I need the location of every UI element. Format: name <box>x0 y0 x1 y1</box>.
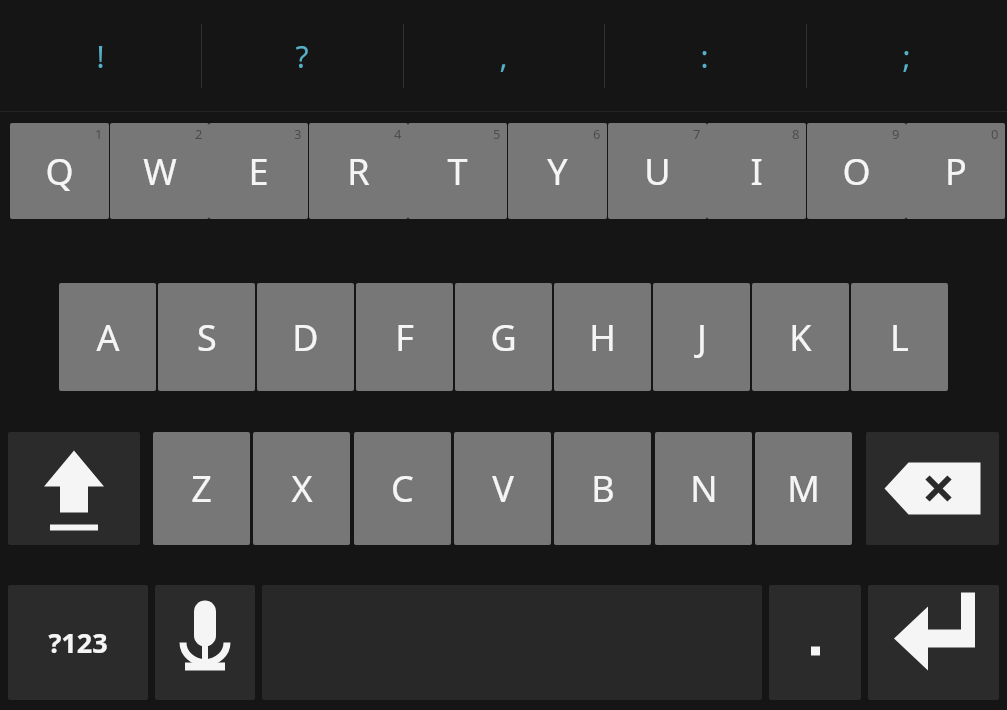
button[interactable]: Z <box>153 432 250 545</box>
staticText: 7 <box>693 125 701 143</box>
button[interactable]: Q <box>10 123 109 219</box>
button[interactable]: ! <box>0 0 201 112</box>
staticText: 1 <box>95 125 103 143</box>
button[interactable]: Enter <box>868 585 999 700</box>
button[interactable]: ?123 <box>8 585 148 700</box>
staticText: L <box>890 313 909 362</box>
button[interactable]: P <box>906 123 1005 219</box>
staticText: 3 <box>294 125 302 143</box>
button[interactable]: S <box>158 283 255 391</box>
button[interactable]: : <box>604 0 805 112</box>
staticText: 9 <box>892 125 900 143</box>
button[interactable]: Period <box>769 585 861 700</box>
button[interactable]: G <box>455 283 552 391</box>
button[interactable]: F <box>356 283 453 391</box>
staticText: X <box>291 464 313 513</box>
staticText: 6 <box>593 125 601 143</box>
staticText: F <box>395 313 414 362</box>
staticText: K <box>789 313 812 362</box>
button[interactable]: I <box>707 123 806 219</box>
button[interactable]: Shift <box>8 432 140 545</box>
staticText: 0 <box>991 125 999 143</box>
staticText: S <box>197 313 217 362</box>
staticText: V <box>492 464 514 513</box>
button[interactable]: B <box>554 432 651 545</box>
button[interactable]: H <box>554 283 651 391</box>
button[interactable]: R <box>309 123 408 219</box>
button[interactable]: K <box>752 283 849 391</box>
staticText: , <box>499 36 508 77</box>
staticText: ; <box>902 36 911 77</box>
button[interactable]: W <box>110 123 209 219</box>
button[interactable]: U <box>608 123 707 219</box>
staticText: J <box>697 313 707 362</box>
staticText: P <box>945 147 967 196</box>
staticText: ? <box>295 36 309 77</box>
staticText: 2 <box>195 125 203 143</box>
button[interactable]: N <box>655 432 752 545</box>
staticText: 5 <box>493 125 501 143</box>
staticText: T <box>447 147 468 196</box>
staticText: H <box>589 313 616 362</box>
button[interactable]: ? <box>201 0 402 112</box>
button[interactable]: C <box>354 432 451 545</box>
staticText: A <box>96 313 120 362</box>
button[interactable]: , <box>403 0 604 112</box>
staticText: Z <box>191 464 212 513</box>
button[interactable]: Voice input <box>155 585 255 700</box>
staticText: 8 <box>792 125 800 143</box>
staticText: W <box>143 147 177 196</box>
button[interactable]: J <box>653 283 750 391</box>
button[interactable]: ; <box>806 0 1007 112</box>
button[interactable]: M <box>755 432 852 545</box>
button[interactable]: D <box>257 283 354 391</box>
staticText: Y <box>547 147 568 196</box>
staticText: D <box>292 313 319 362</box>
button[interactable]: Y <box>508 123 607 219</box>
staticText: U <box>644 147 671 196</box>
staticText: O <box>842 147 871 196</box>
staticText: C <box>391 464 414 513</box>
button[interactable]: L <box>851 283 948 391</box>
button[interactable]: X <box>253 432 350 545</box>
staticText: ?123 <box>48 624 108 661</box>
button[interactable]: E <box>209 123 308 219</box>
button[interactable]: Backspace <box>866 432 999 545</box>
staticText: : <box>700 36 709 77</box>
staticText: E <box>248 147 269 196</box>
staticText: ! <box>96 36 105 77</box>
staticText: N <box>690 464 718 513</box>
button[interactable]: O <box>807 123 906 219</box>
button[interactable]: T <box>408 123 507 219</box>
staticText: M <box>787 464 820 513</box>
button[interactable]: V <box>454 432 551 545</box>
staticText: R <box>347 147 370 196</box>
staticText: G <box>490 313 517 362</box>
staticText: I <box>750 147 763 196</box>
staticText: Q <box>45 147 74 196</box>
staticText: 4 <box>394 125 402 143</box>
staticText: B <box>591 464 615 513</box>
button[interactable]: A <box>59 283 156 391</box>
